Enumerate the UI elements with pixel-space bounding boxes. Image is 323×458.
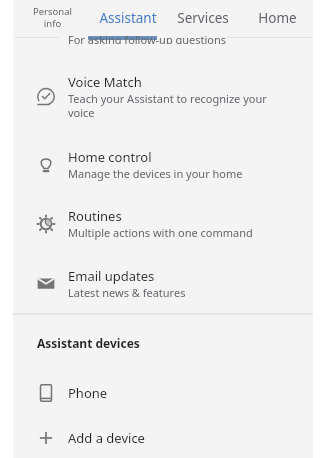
staticText: Add a device — [68, 429, 145, 447]
staticText: Voice Match — [68, 73, 142, 91]
other: Phone — [37, 384, 55, 402]
staticText: Phone — [68, 384, 108, 402]
other: Email updates — [37, 274, 55, 292]
button[interactable]: Services — [165, 0, 240, 33]
button[interactable]: Personal info — [15, 0, 90, 33]
button[interactable]: Add a device — [13, 416, 313, 458]
staticText: Routines — [68, 207, 122, 225]
staticText: Multiple actions with one command — [68, 225, 303, 240]
button[interactable]: Phone — [13, 371, 313, 415]
button[interactable]: Assistant — [90, 0, 165, 33]
staticText: Email updates — [68, 267, 155, 285]
staticText: Home control — [68, 148, 152, 166]
staticText: Assistant devices — [37, 335, 140, 351]
staticText: Latest news & features — [68, 285, 303, 300]
staticText: Services — [177, 9, 229, 27]
other: Home control — [37, 156, 55, 174]
staticText: Home — [258, 9, 297, 27]
staticText: Assistant — [99, 9, 157, 27]
other: Add a device — [37, 429, 55, 447]
staticText: Teach your Assistant to recognize your v… — [68, 91, 278, 120]
other: Routines — [37, 215, 55, 233]
button[interactable]: Home — [240, 0, 313, 33]
button[interactable]: Routines — [13, 197, 313, 251]
other: Voice Match — [37, 88, 55, 106]
staticText: For asking follow-up questions — [68, 36, 227, 44]
staticText: Personal info — [33, 5, 72, 30]
staticText: Manage the devices in your home — [68, 166, 303, 181]
button[interactable]: Voice Match — [13, 63, 313, 117]
button[interactable]: Home control — [13, 138, 313, 192]
button[interactable]: Email updates — [13, 257, 313, 311]
